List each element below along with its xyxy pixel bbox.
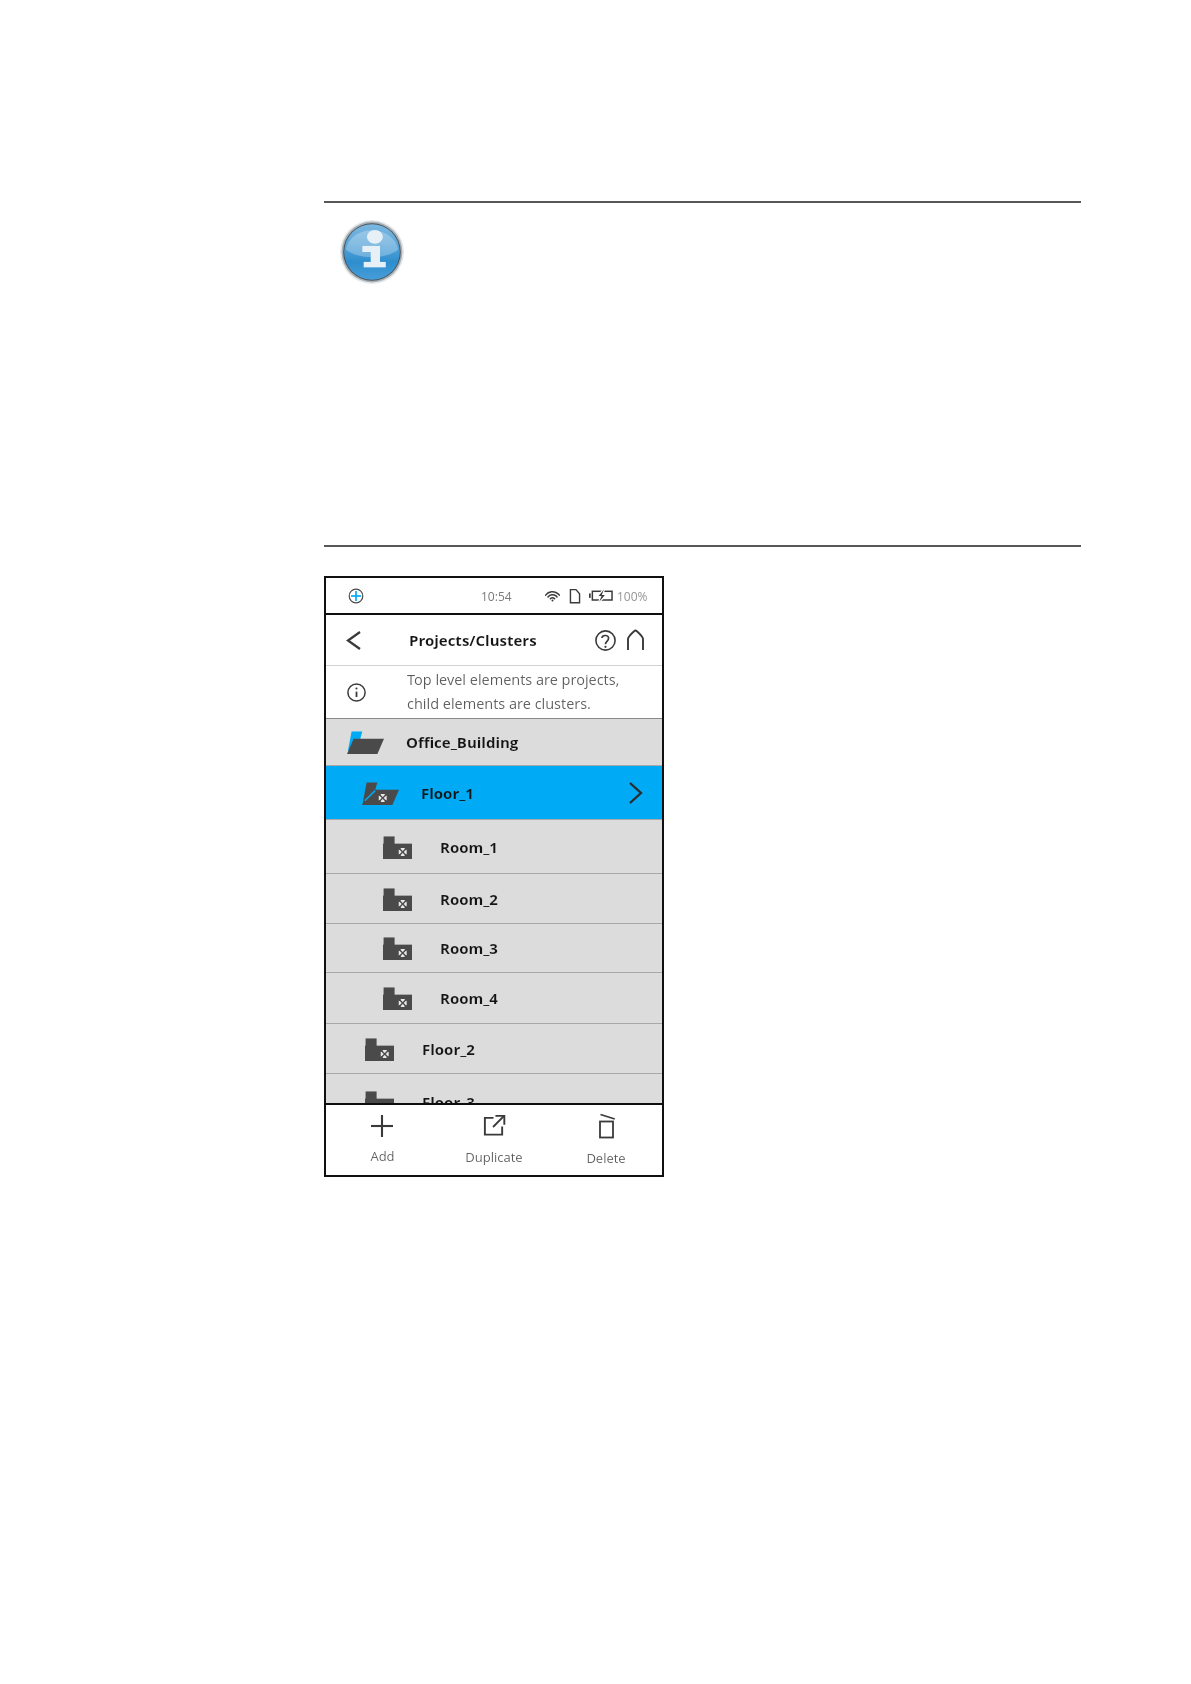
staticText: 100% [617,588,648,604]
staticText: Projects/Clusters [409,630,537,650]
staticText: 10:54 [481,588,512,604]
button[interactable]: Room_3 [326,924,662,972]
button[interactable]: Floor_1 [326,766,662,819]
staticText: Room_2 [440,889,498,909]
staticText: Room_3 [440,938,498,958]
staticText: Floor_3 [422,1092,475,1103]
button[interactable]: Room_1 [326,820,662,873]
button[interactable]: Add item [348,588,364,604]
button[interactable]: Floor_2 [326,1024,662,1073]
button[interactable]: Back [337,623,371,657]
button[interactable]: Room_2 [326,874,662,923]
staticText: Room_4 [440,988,498,1008]
button[interactable]: Add [326,1105,438,1175]
button[interactable]: Help [590,625,620,655]
staticText: Office_Building [406,732,519,752]
staticText: Room_1 [440,837,498,857]
button[interactable]: Floor_3 [326,1074,662,1103]
staticText: Add [370,1147,395,1165]
staticText: Top level elements are projects, [407,670,620,690]
button[interactable]: Home [620,625,650,655]
button[interactable]: Delete [550,1105,662,1175]
button[interactable]: Office_Building [326,719,662,765]
staticText: Floor_1 [421,783,474,803]
button[interactable]: Duplicate [438,1105,550,1175]
staticText: Duplicate [465,1148,523,1166]
button[interactable]: Room_4 [326,973,662,1023]
staticText: Delete [586,1149,626,1167]
staticText: Floor_2 [422,1039,475,1059]
staticText: child elements are clusters. [407,694,591,714]
